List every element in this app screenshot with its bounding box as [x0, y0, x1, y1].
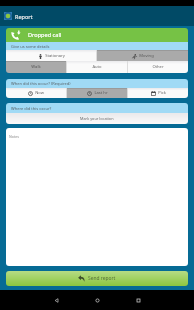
staticText: Where did this occur? [11, 106, 52, 111]
staticText: Pick [158, 90, 166, 96]
staticText: Walk [31, 64, 41, 70]
button[interactable]: Stationary [6, 50, 96, 61]
button[interactable]: Last hr [67, 88, 127, 98]
staticText: Mark your location [80, 116, 114, 121]
button[interactable]: Recent apps [129, 290, 147, 310]
button[interactable]: Now [6, 88, 66, 98]
staticText: Stationary [45, 53, 65, 59]
button[interactable]: Home [88, 290, 106, 310]
button[interactable]: App icon [0, 6, 194, 26]
staticText: Give us some details [11, 44, 50, 49]
staticText: Other [152, 64, 164, 70]
button[interactable]: Send report [6, 271, 188, 286]
staticText: Now [35, 90, 44, 96]
button[interactable]: Back [47, 290, 65, 310]
staticText: Dropped call [28, 31, 62, 39]
staticText: Last hr [94, 90, 108, 96]
staticText: Report [15, 13, 33, 20]
staticText: Notes [9, 134, 19, 139]
button[interactable]: Other [128, 61, 188, 73]
button[interactable]: Auto [67, 61, 127, 73]
button[interactable]: Pick [128, 88, 188, 98]
other: App icon [4, 12, 12, 20]
button[interactable]: Moving [97, 50, 188, 61]
staticText: Send report [88, 275, 116, 282]
staticText: Auto [92, 64, 102, 70]
staticText: When did this occur? (Required) [11, 81, 71, 86]
button[interactable]: Walk [6, 61, 66, 73]
button[interactable]: Notes [6, 128, 188, 266]
staticText: Moving [139, 53, 154, 59]
button[interactable]: Dropped call [6, 28, 188, 42]
button[interactable]: Mark your location [6, 113, 188, 124]
